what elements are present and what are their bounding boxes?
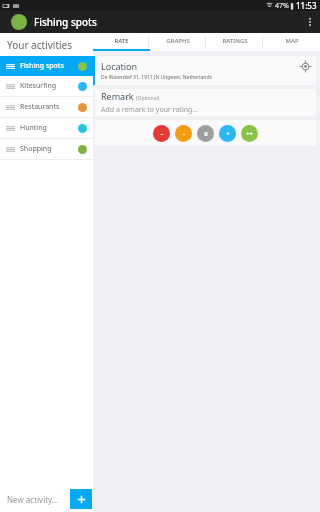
button[interactable]: Rate + [219, 125, 236, 142]
staticText: Fishing spots [20, 61, 78, 71]
button[interactable]: Rate – [153, 125, 170, 142]
staticText: Fishing spots [34, 15, 97, 29]
staticText: Location [101, 60, 138, 72]
button[interactable]: Rate ++ [241, 125, 258, 142]
staticText: Restaurants [20, 102, 78, 112]
staticText: 11:53 [296, 0, 317, 11]
button[interactable]: Kitesurfing [0, 76, 93, 96]
button[interactable]: Remark [95, 89, 316, 116]
staticText: New activity... [7, 494, 59, 505]
button[interactable]: MAP [263, 33, 320, 49]
button[interactable]: Hunting [0, 118, 93, 138]
staticText: Kitesurfing [20, 81, 78, 91]
staticText: 47% [275, 1, 289, 11]
staticText: MAP [285, 37, 299, 45]
button[interactable]: New activity... [3, 489, 68, 509]
staticText: Shopping [20, 144, 78, 154]
button[interactable]: Location [95, 56, 316, 85]
staticText: 0 [204, 130, 208, 138]
button[interactable]: Add activity [70, 489, 92, 509]
staticText: De Waterdief 31, 1911 JN Uitgeest, Nethe… [101, 74, 212, 81]
button[interactable]: Rate - [175, 125, 192, 142]
button[interactable]: Rate 0 [197, 125, 214, 142]
button[interactable]: Restaurants [0, 97, 93, 117]
button[interactable]: Fishing spots [0, 56, 93, 76]
button[interactable]: Shopping [0, 139, 93, 159]
button[interactable]: GRAPHS [149, 33, 206, 49]
staticText: (Optional) [136, 95, 160, 102]
button[interactable]: Use current location [299, 60, 311, 72]
staticText: + [226, 130, 230, 138]
staticText: Your activities [7, 38, 72, 52]
staticText: RATINGS [222, 37, 248, 45]
staticText: Add a remark to your rating... [101, 105, 198, 115]
staticText: Hunting [20, 123, 78, 133]
staticText: Remark [101, 90, 134, 102]
button[interactable]: More options [300, 12, 320, 32]
staticText: RATE [114, 37, 129, 45]
staticText: - [183, 130, 185, 138]
staticText: GRAPHS [166, 37, 190, 45]
staticText: – [160, 130, 164, 138]
button[interactable]: RATINGS [206, 33, 263, 49]
button[interactable]: RATE [93, 33, 149, 49]
staticText: ++ [246, 130, 253, 138]
